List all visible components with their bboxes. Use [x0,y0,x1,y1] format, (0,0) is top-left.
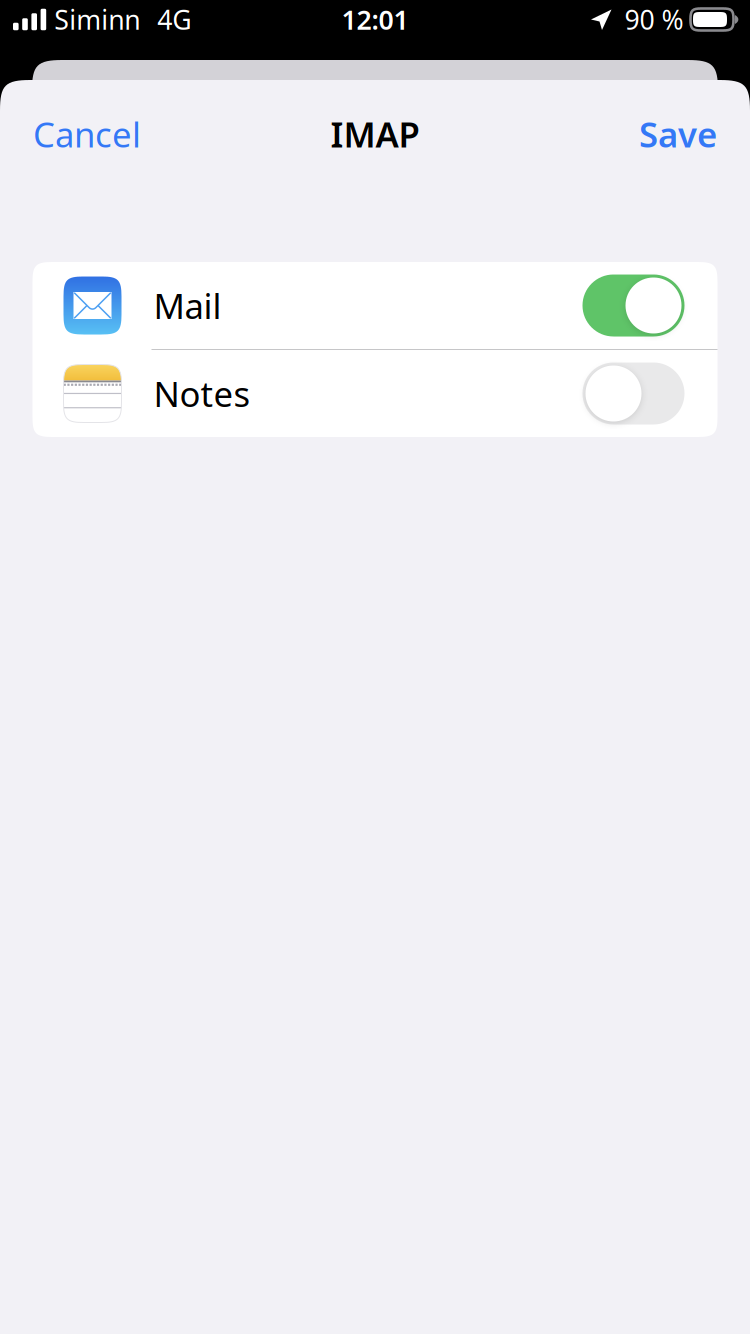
staticText: Save [639,111,717,157]
button[interactable]: Notes toggle [582,362,717,424]
button[interactable]: Mail toggle [582,274,717,336]
staticText: Cancel [33,111,141,157]
button[interactable]: Save [623,95,717,173]
staticText: Mail [153,282,221,328]
staticText: 4G [157,2,191,37]
staticText: 90 % [624,2,683,37]
staticText: 12:01 [341,2,408,37]
staticText: Siminn [54,2,140,37]
button[interactable]: Cancel [33,95,157,173]
staticText: IMAP [330,111,419,157]
staticText: Notes [153,370,250,416]
